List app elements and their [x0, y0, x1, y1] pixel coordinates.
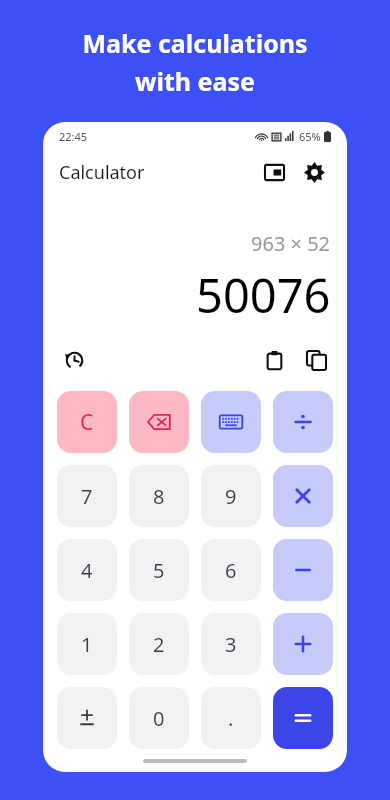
button[interactable]: 2	[129, 613, 189, 675]
button[interactable]: 7	[57, 465, 117, 527]
staticText: 0	[153, 705, 165, 732]
staticText: 2	[153, 631, 165, 658]
staticText: 22:45	[59, 129, 88, 144]
button[interactable]: Picture in picture	[257, 155, 291, 189]
staticText: 8	[153, 483, 165, 510]
staticText: 4	[81, 557, 93, 584]
button[interactable]: 5	[129, 539, 189, 601]
button[interactable]: Copy	[299, 343, 333, 377]
staticText: Make calculations	[82, 26, 308, 60]
staticText: 50076	[196, 263, 331, 327]
button[interactable]: 6	[201, 539, 261, 601]
button[interactable]: History	[57, 343, 91, 377]
staticText: 1	[81, 631, 93, 658]
staticText: 6	[225, 557, 237, 584]
button[interactable]: Divide	[273, 391, 333, 453]
button[interactable]: .	[201, 687, 261, 749]
staticText: 7	[81, 483, 93, 510]
staticText: Calculator	[59, 160, 145, 185]
button[interactable]: 1	[57, 613, 117, 675]
button[interactable]: C	[57, 391, 117, 453]
staticText: with ease	[135, 64, 255, 98]
button[interactable]: Keyboard	[201, 391, 261, 453]
button[interactable]: Multiply	[273, 465, 333, 527]
button[interactable]: Paste	[257, 343, 291, 377]
button[interactable]: 4	[57, 539, 117, 601]
staticText: C	[80, 408, 94, 437]
button[interactable]: 9	[201, 465, 261, 527]
button[interactable]: Minus	[273, 539, 333, 601]
staticText: 65%	[299, 129, 321, 144]
button[interactable]: Settings	[297, 155, 331, 189]
button[interactable]: 8	[129, 465, 189, 527]
button[interactable]: Plus	[273, 613, 333, 675]
button[interactable]: 0	[129, 687, 189, 749]
staticText: 5	[153, 557, 165, 584]
staticText: 3	[225, 631, 237, 658]
button[interactable]: Backspace	[129, 391, 189, 453]
staticText: .	[228, 705, 234, 732]
staticText: 963 × 52	[251, 230, 331, 257]
button[interactable]: Toggle sign	[57, 687, 117, 749]
button[interactable]: 3	[201, 613, 261, 675]
staticText: 9	[225, 483, 237, 510]
button[interactable]: Equals	[273, 687, 333, 749]
